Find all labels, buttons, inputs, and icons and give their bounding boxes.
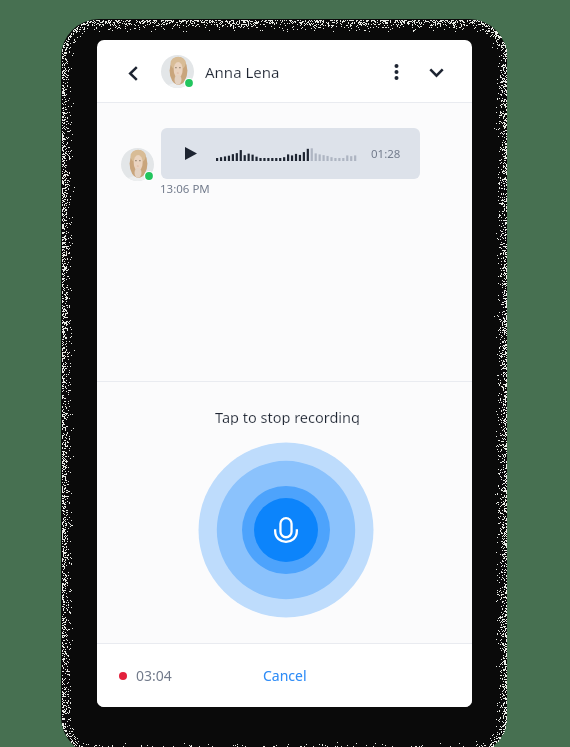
button[interactable]: 01:28	[161, 128, 420, 179]
staticText: Anna Lena	[205, 62, 280, 82]
staticText: 01:28	[371, 146, 401, 162]
button[interactable]: Anna Lena	[205, 54, 280, 90]
staticText: Tap to stop recording	[215, 407, 360, 425]
staticText: Cancel	[263, 666, 307, 685]
staticText: 13:06 PM	[160, 181, 210, 197]
button[interactable]: Stop recording	[198, 442, 374, 618]
button[interactable]: More options	[376, 52, 416, 92]
staticText: 03:04	[136, 666, 172, 685]
button[interactable]: Cancel	[243, 652, 327, 699]
button[interactable]: Collapse	[416, 52, 456, 92]
button[interactable]: Back	[112, 52, 154, 94]
